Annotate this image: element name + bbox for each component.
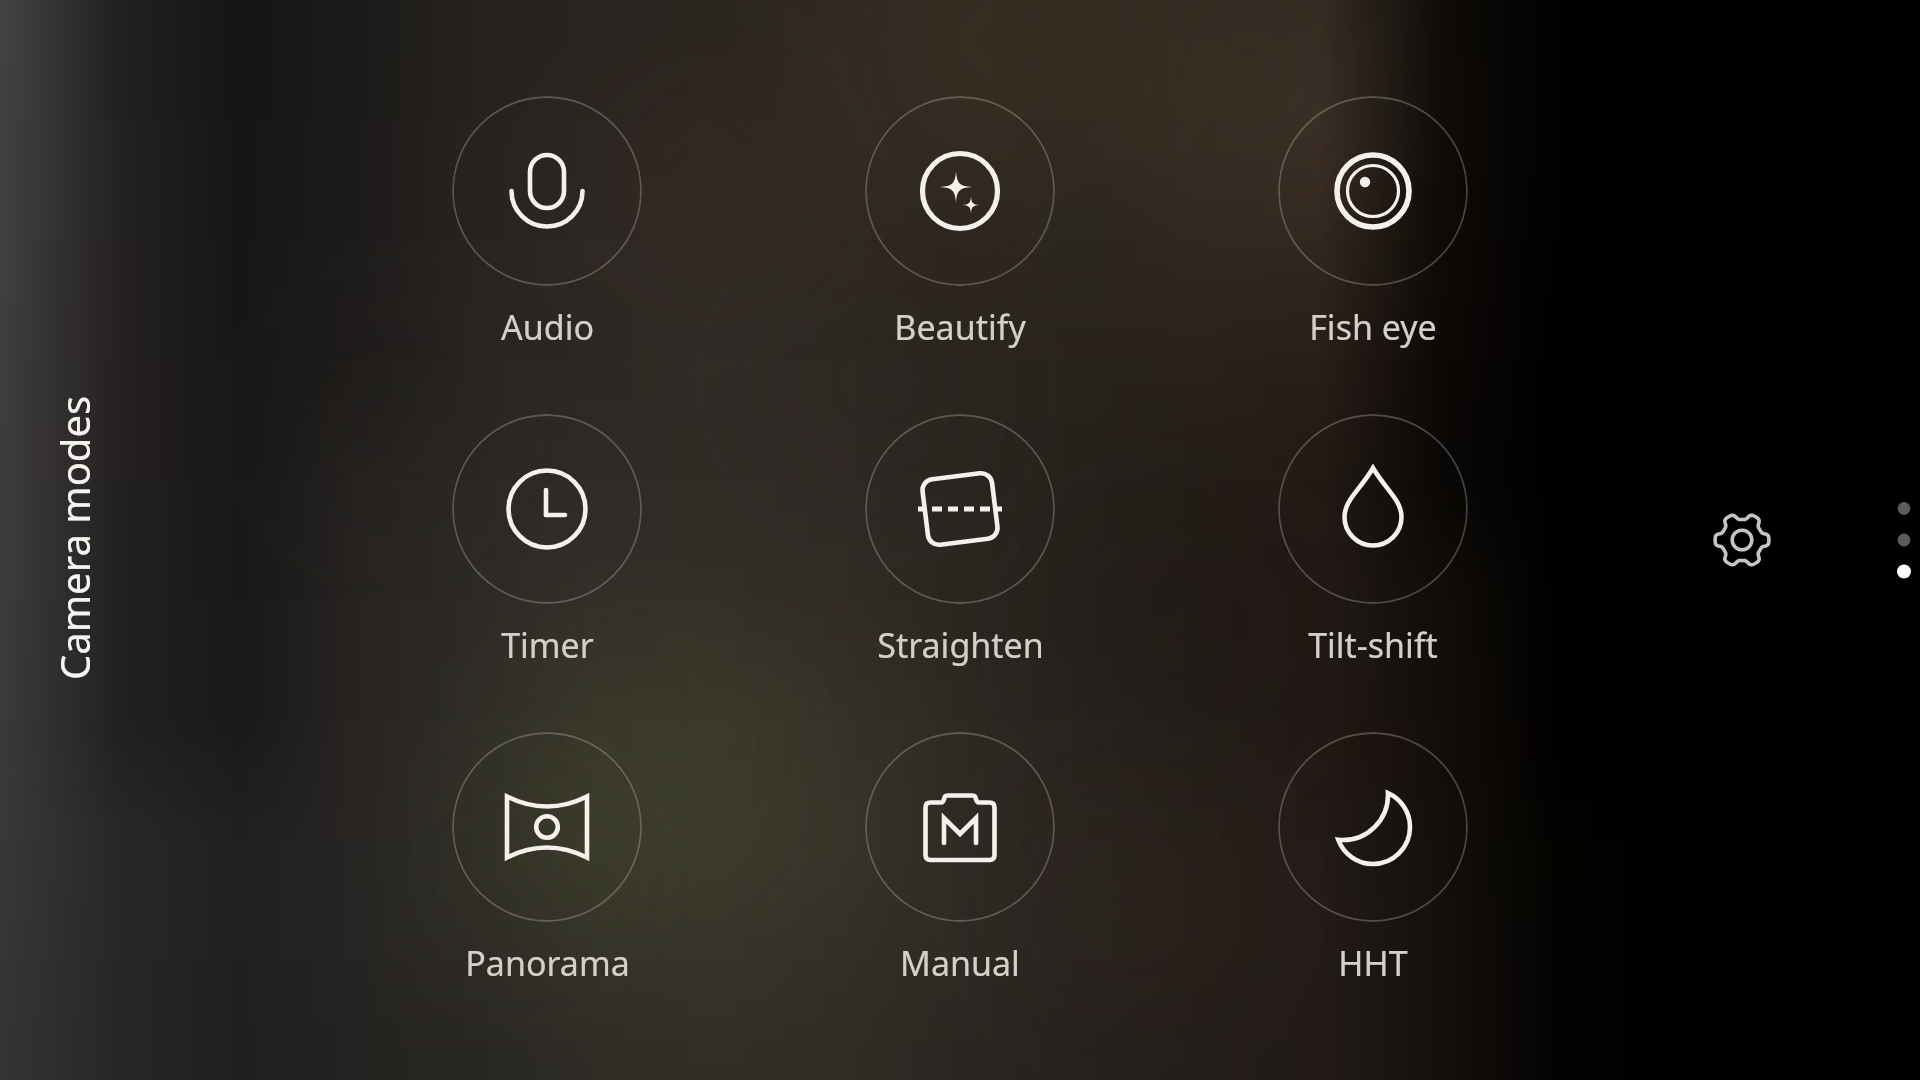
- staticText: Audio: [501, 304, 594, 350]
- button[interactable]: Fish eye: [1213, 88, 1533, 350]
- button[interactable]: Audio: [387, 88, 707, 350]
- staticText: Panorama: [465, 940, 630, 986]
- button[interactable]: Beautify: [800, 88, 1120, 350]
- button[interactable]: Tilt-shift: [1213, 406, 1533, 668]
- staticText: HHT: [1338, 940, 1408, 986]
- staticText: Beautify: [894, 304, 1026, 350]
- staticText: Tilt-shift: [1308, 622, 1438, 668]
- button[interactable]: Settings: [1707, 505, 1777, 575]
- staticText: Timer: [501, 622, 594, 668]
- button[interactable]: Manual: [800, 724, 1120, 986]
- staticText: Manual: [900, 940, 1020, 986]
- staticText: Camera modes: [47, 395, 101, 680]
- staticText: Fish eye: [1309, 304, 1437, 350]
- button[interactable]: Straighten: [800, 406, 1120, 668]
- button[interactable]: Panorama: [387, 724, 707, 986]
- staticText: Straighten: [877, 622, 1044, 668]
- button[interactable]: HHT: [1213, 724, 1533, 986]
- button[interactable]: Timer: [387, 406, 707, 668]
